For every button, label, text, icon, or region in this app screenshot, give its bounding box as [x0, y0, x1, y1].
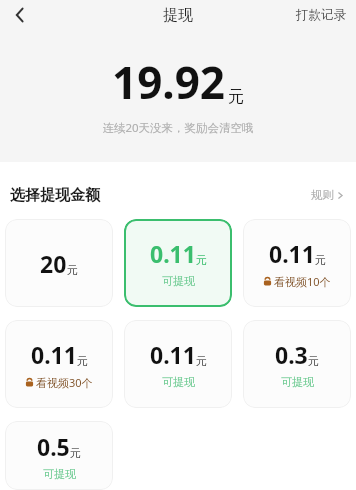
staticText: 元 — [196, 253, 207, 267]
staticText: 元 — [67, 263, 78, 277]
staticText: 元 — [315, 253, 326, 267]
staticText: 看视频10个 — [274, 274, 331, 289]
button[interactable]: 0.11 — [124, 219, 232, 307]
staticText: 0.11 — [150, 339, 196, 370]
staticText: 元 — [228, 87, 244, 107]
staticText: 元 — [196, 354, 207, 368]
staticText: 可提现 — [162, 274, 195, 288]
staticText: 规则 — [311, 188, 334, 202]
button[interactable]: 0.5 — [5, 421, 113, 490]
staticText: 0.11 — [269, 238, 315, 269]
staticText: 选择提现金额 — [10, 186, 100, 205]
staticText: 元 — [70, 446, 81, 460]
staticText: 可提现 — [162, 375, 195, 389]
staticText: 可提现 — [281, 375, 314, 389]
staticText: 0.5 — [37, 431, 70, 462]
button[interactable]: 0.11 — [243, 219, 351, 307]
button[interactable]: 规则 — [309, 184, 346, 206]
button[interactable]: 0.3 — [243, 320, 351, 408]
staticText: 打款记录 — [296, 7, 346, 23]
staticText: 看视频30个 — [36, 375, 93, 390]
staticText: 20 — [40, 248, 67, 279]
staticText: 可提现 — [43, 467, 76, 481]
staticText: 0.11 — [150, 238, 196, 269]
staticText: 0.3 — [275, 339, 308, 370]
staticText: 19.92 — [112, 52, 226, 112]
button[interactable]: 20 — [5, 219, 113, 307]
staticText: 0.11 — [31, 339, 77, 370]
staticText: 元 — [77, 354, 88, 368]
staticText: 连续20天没来，奖励会清空哦 — [0, 120, 356, 136]
button[interactable]: 0.11 — [5, 320, 113, 408]
staticText: 提现 — [163, 6, 193, 25]
button[interactable]: 打款记录 — [286, 3, 356, 27]
button[interactable]: Back — [4, 0, 36, 30]
staticText: 元 — [308, 354, 319, 368]
button[interactable]: 0.11 — [124, 320, 232, 408]
